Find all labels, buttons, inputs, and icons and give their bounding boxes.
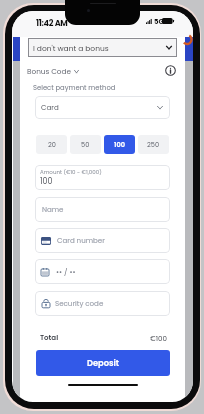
- button[interactable]: Card: [35, 96, 170, 119]
- staticText: •• / ••: [56, 267, 76, 277]
- button[interactable]: Card number: [35, 228, 170, 253]
- staticText: Deposit: [87, 357, 120, 369]
- button[interactable]: Security code: [35, 291, 170, 316]
- button[interactable]: Name: [35, 197, 170, 222]
- staticText: Security code: [55, 299, 104, 309]
- staticText: 5G: [154, 17, 164, 27]
- button[interactable]: Bonus Code: [27, 65, 79, 77]
- staticText: Select payment method: [33, 83, 116, 93]
- staticText: Card: [41, 103, 59, 113]
- button[interactable]: 20: [36, 135, 67, 154]
- button[interactable]: Deposit: [36, 350, 170, 376]
- staticText: Card number: [57, 236, 105, 246]
- staticText: 11:42 AM: [36, 17, 68, 28]
- button[interactable]: Amount (€10 - €1,000): [35, 165, 170, 190]
- staticText: Name: [42, 205, 64, 215]
- staticText: 20: [48, 140, 56, 149]
- staticText: Amount (€10 - €1,000): [40, 168, 102, 176]
- button[interactable]: •• / ••: [35, 259, 170, 284]
- staticText: Total: [40, 333, 59, 343]
- staticText: I don't want a bonus: [33, 43, 109, 53]
- staticText: 50: [81, 140, 90, 149]
- button[interactable]: More information: [164, 64, 177, 77]
- button[interactable]: 100: [104, 135, 135, 154]
- staticText: 250: [147, 140, 160, 149]
- staticText: Bonus Code: [27, 66, 71, 76]
- staticText: €100: [150, 334, 167, 344]
- button[interactable]: I don't want a bonus: [28, 38, 177, 57]
- button[interactable]: 50: [70, 135, 101, 154]
- button[interactable]: 250: [138, 135, 169, 154]
- staticText: 100: [40, 176, 53, 187]
- staticText: 100: [114, 140, 125, 149]
